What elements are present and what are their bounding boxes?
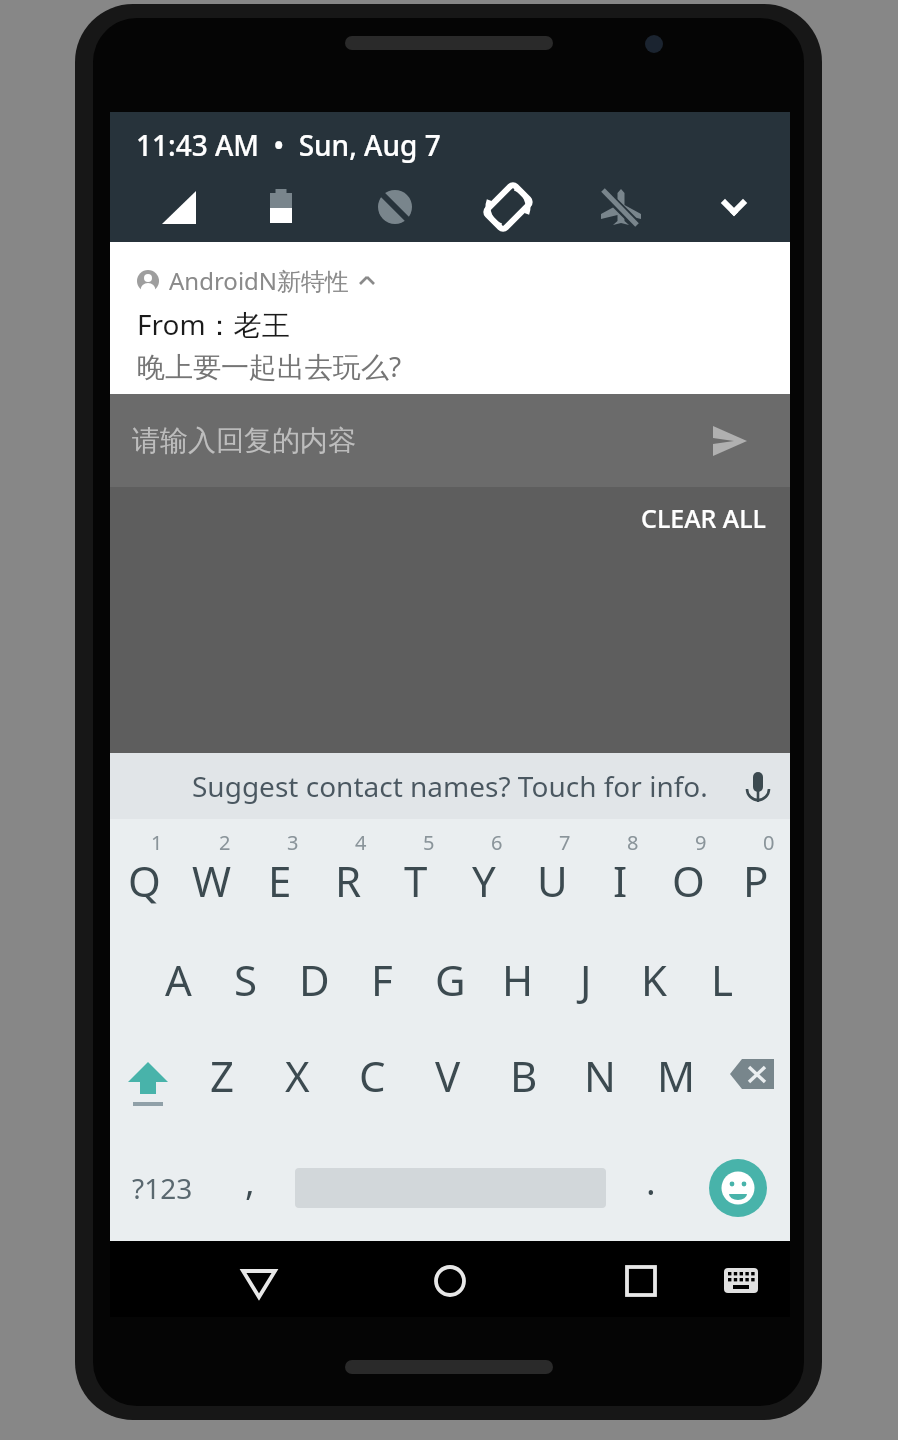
- button[interactable]: Do not disturb: [338, 178, 451, 236]
- staticText: U: [537, 852, 568, 909]
- staticText: N: [584, 1047, 616, 1104]
- button[interactable]: Mobile data: [110, 178, 224, 236]
- staticText: C: [359, 1047, 386, 1104]
- button[interactable]: Back: [230, 1250, 288, 1308]
- staticText: M: [657, 1047, 696, 1104]
- staticText: CLEAR ALL: [641, 501, 766, 535]
- staticText: Y: [472, 852, 496, 909]
- button[interactable]: D: [280, 929, 348, 1029]
- button[interactable]: 1: [110, 819, 178, 929]
- staticText: O: [672, 852, 705, 909]
- button[interactable]: B: [486, 1029, 562, 1134]
- staticText: 8: [627, 829, 639, 856]
- button[interactable]: Expand: [677, 178, 790, 236]
- button[interactable]: 5: [382, 819, 450, 929]
- button[interactable]: Hide keyboard: [712, 1250, 770, 1308]
- staticText: B: [510, 1047, 538, 1104]
- button[interactable]: Emoji: [686, 1134, 790, 1241]
- staticText: X: [285, 1047, 310, 1104]
- staticText: V: [435, 1047, 461, 1104]
- button[interactable]: M: [638, 1029, 714, 1134]
- staticText: 6: [491, 829, 503, 856]
- button[interactable]: Airplane mode: [564, 178, 677, 236]
- staticText: H: [502, 951, 534, 1008]
- staticText: T: [404, 852, 428, 909]
- button[interactable]: 4: [314, 819, 382, 929]
- button[interactable]: A: [144, 929, 212, 1029]
- staticText: G: [435, 951, 466, 1008]
- staticText: AndroidN新特性: [169, 264, 350, 297]
- staticText: R: [335, 852, 362, 909]
- button[interactable]: Home: [421, 1250, 479, 1308]
- staticText: D: [299, 951, 330, 1008]
- button[interactable]: Suggest contact names? Touch for info.: [192, 767, 708, 805]
- staticText: 0: [763, 829, 775, 856]
- staticText: A: [165, 951, 192, 1008]
- button[interactable]: AndroidN新特性: [110, 242, 790, 394]
- button[interactable]: G: [416, 929, 484, 1029]
- button[interactable]: S: [212, 929, 280, 1029]
- staticText: S: [234, 951, 258, 1008]
- button[interactable]: L: [688, 929, 756, 1029]
- staticText: 晚上要一起出去玩么?: [137, 347, 402, 385]
- button[interactable]: Recents: [612, 1250, 670, 1308]
- staticText: From：老王: [137, 305, 290, 343]
- staticText: ,: [245, 1157, 255, 1206]
- button[interactable]: Shift: [110, 1029, 185, 1134]
- staticText: 11:43 AM • Sun, Aug 7: [136, 126, 441, 164]
- button[interactable]: 0: [722, 819, 790, 929]
- staticText: F: [371, 951, 393, 1008]
- button[interactable]: 6: [450, 819, 518, 929]
- button[interactable]: F: [348, 929, 416, 1029]
- staticText: 请输入回复的内容: [132, 423, 356, 458]
- button[interactable]: V: [410, 1029, 486, 1134]
- staticText: 1: [151, 829, 163, 856]
- button[interactable]: Voice input: [738, 766, 778, 806]
- staticText: Q: [128, 852, 161, 909]
- staticText: ?123: [132, 1169, 193, 1207]
- staticText: K: [641, 951, 667, 1008]
- button[interactable]: Auto rotate: [451, 178, 564, 236]
- button[interactable]: .: [616, 1134, 686, 1241]
- staticText: Z: [210, 1047, 235, 1104]
- staticText: E: [268, 852, 292, 909]
- staticText: P: [743, 852, 769, 909]
- button[interactable]: N: [562, 1029, 638, 1134]
- staticText: 4: [355, 829, 367, 856]
- button[interactable]: Z: [185, 1029, 260, 1134]
- button[interactable]: 请输入回复的内容: [110, 394, 790, 487]
- staticText: J: [580, 951, 592, 1008]
- staticText: 3: [287, 829, 299, 856]
- button[interactable]: ?123: [110, 1134, 215, 1241]
- button[interactable]: CLEAR ALL: [617, 487, 790, 549]
- button[interactable]: H: [484, 929, 552, 1029]
- staticText: 2: [219, 829, 231, 856]
- button[interactable]: Battery: [224, 178, 338, 236]
- staticText: .: [646, 1157, 656, 1206]
- button[interactable]: 8: [586, 819, 654, 929]
- staticText: 5: [423, 829, 435, 856]
- button[interactable]: 2: [178, 819, 246, 929]
- button[interactable]: 7: [518, 819, 586, 929]
- button[interactable]: ,: [215, 1134, 285, 1241]
- staticText: W: [192, 852, 232, 909]
- staticText: I: [613, 852, 628, 909]
- button[interactable]: X: [260, 1029, 335, 1134]
- button[interactable]: 3: [246, 819, 314, 929]
- staticText: 7: [559, 829, 571, 856]
- staticText: 9: [695, 829, 707, 856]
- button[interactable]: Send: [712, 423, 748, 459]
- button[interactable]: Backspace: [714, 1029, 790, 1134]
- staticText: L: [711, 951, 734, 1008]
- button[interactable]: 9: [654, 819, 722, 929]
- button[interactable]: Space: [285, 1134, 616, 1241]
- button[interactable]: K: [620, 929, 688, 1029]
- button[interactable]: J: [552, 929, 620, 1029]
- button[interactable]: C: [335, 1029, 410, 1134]
